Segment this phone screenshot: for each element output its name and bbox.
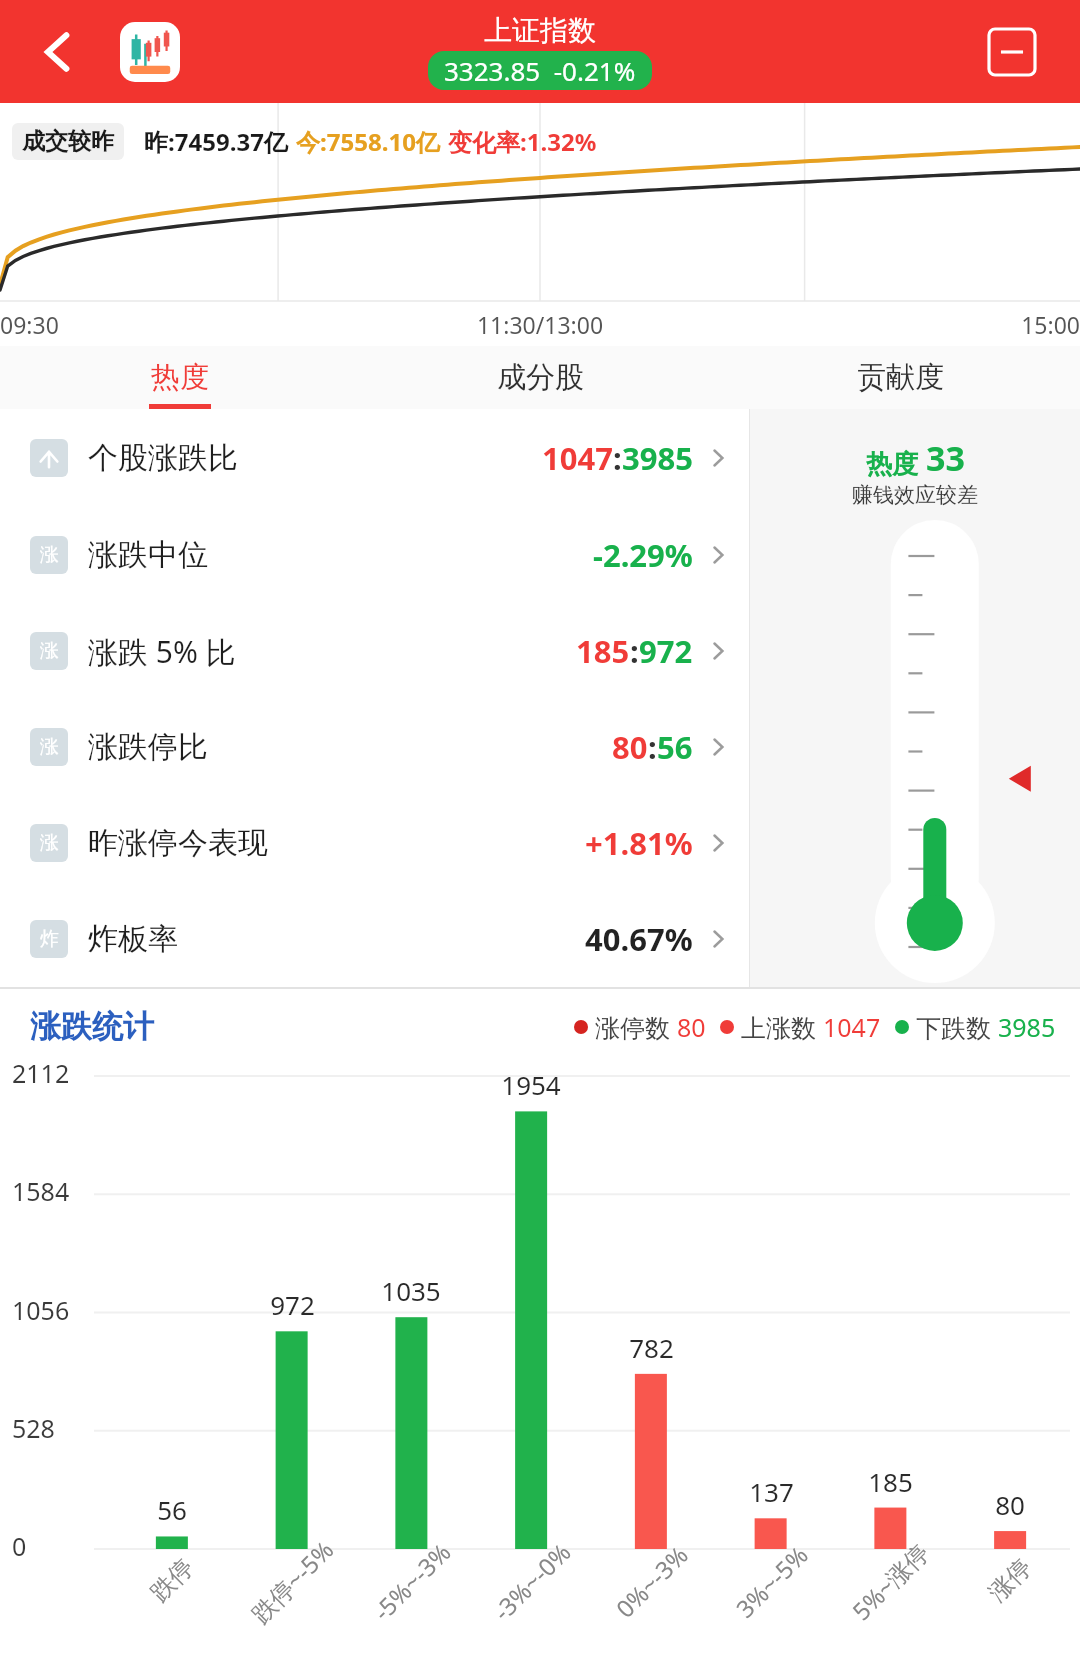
staticText: 成交较昨 (22, 127, 114, 156)
staticText: 185 (576, 630, 630, 672)
staticText: 80 (612, 726, 648, 768)
button[interactable]: 个股涨跌比 (0, 409, 749, 506)
staticText: : (648, 726, 657, 768)
staticText: 涨跌停比 (88, 728, 208, 766)
staticText: 2112 (12, 1056, 70, 1090)
staticText: 跌停 (144, 1552, 200, 1608)
staticText: 185 (868, 1464, 913, 1499)
staticText: 0 (12, 1529, 27, 1563)
staticText: 528 (12, 1411, 55, 1445)
staticText: 11:30/13:00 (360, 309, 720, 340)
staticText: 3985 (622, 437, 693, 479)
staticText: -2.29% (593, 534, 693, 576)
button[interactable]: Minimize (984, 24, 1040, 80)
staticText: 涨 (40, 639, 59, 663)
staticText: 涨 (40, 735, 59, 759)
staticText: 上涨数 (741, 1010, 823, 1044)
staticText: 昨:7459.37亿 (144, 125, 288, 158)
staticText: -3%~-0% (485, 1535, 577, 1627)
staticText: 1584 (12, 1174, 70, 1208)
button[interactable]: 涨 (0, 603, 749, 699)
staticText: 跌停~-5% (244, 1533, 340, 1630)
button[interactable]: 涨 (0, 795, 749, 891)
staticText: -5%~-3% (365, 1535, 457, 1627)
staticText: 80 (995, 1487, 1025, 1522)
staticText: 成分股 (497, 359, 584, 396)
staticText: 涨跌 5% 比 (88, 631, 236, 672)
button[interactable]: Back (24, 18, 92, 86)
staticText: 昨涨停今表现 (88, 824, 268, 862)
staticText: : (613, 437, 622, 479)
staticText: 3323.85 -0.21% (444, 53, 636, 88)
staticText: 782 (629, 1330, 674, 1365)
staticText: 1954 (501, 1067, 561, 1102)
button[interactable]: 炸 (0, 891, 749, 987)
button[interactable]: Logo (120, 22, 180, 82)
staticText: 上证指数 (484, 13, 596, 48)
button[interactable]: 涨 (0, 506, 749, 603)
staticText: 40.67% (585, 918, 693, 960)
staticText: 137 (749, 1474, 794, 1509)
staticText: 56 (657, 726, 693, 768)
staticText: +1.81% (585, 822, 693, 864)
staticText: 涨 (40, 831, 59, 855)
staticText: 1047 (542, 437, 613, 479)
staticText: 1056 (12, 1293, 70, 1327)
staticText: 个股涨跌比 (88, 439, 238, 477)
staticText: 1035 (381, 1273, 441, 1308)
staticText: 涨停数 (595, 1010, 677, 1044)
staticText: 炸 (40, 927, 59, 951)
staticText: 56 (157, 1492, 187, 1527)
staticText: 0%~-3% (608, 1538, 695, 1625)
staticText: 15:00 (720, 309, 1080, 340)
button[interactable]: 3323.85 -0.21% (444, 53, 636, 88)
staticText: 下跌数 (916, 1010, 998, 1044)
button[interactable]: 成分股 (360, 346, 720, 409)
staticText: 5%~涨停 (844, 1536, 936, 1627)
staticText: 09:30 (0, 309, 360, 340)
staticText: 炸板率 (88, 920, 178, 958)
staticText: 80 (677, 1010, 706, 1044)
staticText: 1047 (823, 1010, 881, 1044)
staticText: 972 (639, 630, 693, 672)
staticText: : (630, 630, 639, 672)
staticText: 3%~-5% (728, 1538, 815, 1625)
staticText: 热度 (151, 359, 209, 396)
staticText: 热度 (866, 448, 918, 481)
staticText: 涨跌统计 (30, 1007, 154, 1046)
staticText: 33 (926, 435, 965, 481)
button[interactable]: 贡献度 (720, 346, 1080, 409)
staticText: 变化率:1.32% (448, 125, 597, 158)
staticText: 今:7558.10亿 (296, 125, 440, 158)
staticText: 972 (270, 1287, 315, 1322)
button[interactable]: 热度 (0, 346, 360, 409)
staticText: 涨停 (982, 1552, 1038, 1608)
button[interactable]: 成交较昨 (22, 127, 114, 156)
staticText: 赚钱效应较差 (852, 482, 978, 508)
staticText: 涨跌中位 (88, 536, 208, 574)
staticText: 涨 (40, 543, 59, 567)
staticText: 贡献度 (857, 359, 944, 396)
button[interactable]: 涨 (0, 699, 749, 795)
staticText: 3985 (998, 1010, 1056, 1044)
